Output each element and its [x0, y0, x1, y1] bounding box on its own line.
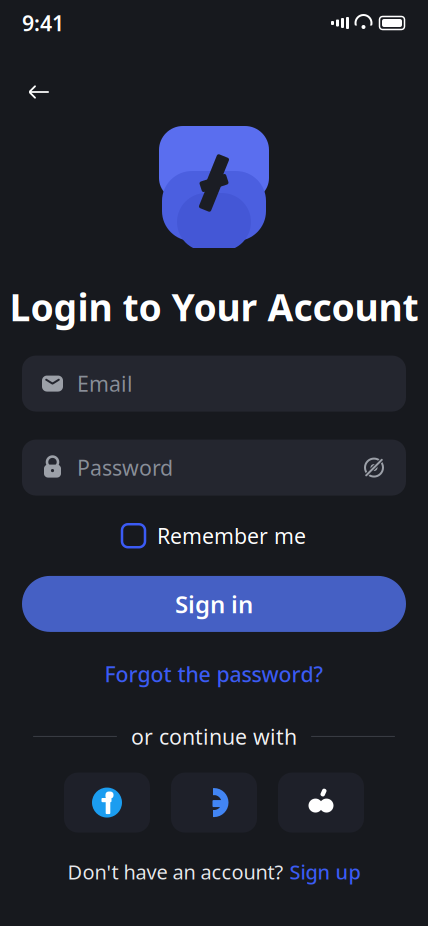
- staticText: Password: [77, 453, 173, 482]
- button[interactable]: Continue with Apple: [278, 773, 364, 833]
- button[interactable]: Remember me: [116, 514, 312, 558]
- staticText: 9:41: [22, 9, 64, 37]
- button[interactable]: Continue with Google: [171, 773, 257, 833]
- staticText: Sign in: [175, 588, 253, 620]
- staticText: Sign up: [289, 859, 360, 885]
- button[interactable]: Sign in: [22, 576, 406, 632]
- button[interactable]: Forgot the password?: [94, 652, 333, 696]
- staticText: Remember me: [157, 522, 306, 550]
- staticText: Login to Your Account: [9, 282, 418, 332]
- button[interactable]: Show password: [362, 456, 386, 480]
- button[interactable]: Sign up: [289, 859, 360, 885]
- staticText: Forgot the password?: [104, 660, 323, 688]
- button[interactable]: Back: [17, 70, 61, 114]
- staticText: or continue with: [131, 722, 297, 750]
- button[interactable]: Continue with Facebook: [64, 773, 150, 833]
- staticText: Don't have an account?: [67, 859, 283, 885]
- staticText: Email: [77, 369, 133, 398]
